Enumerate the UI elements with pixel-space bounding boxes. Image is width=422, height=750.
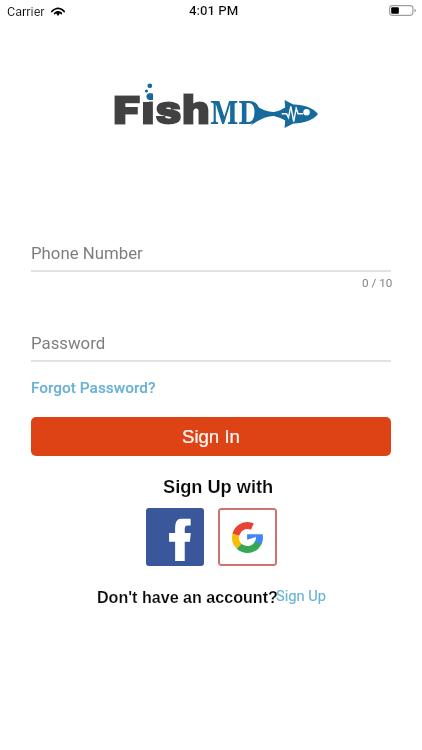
staticText: Sign Up xyxy=(276,587,327,604)
staticText: Phone Number xyxy=(31,243,143,263)
staticText: Don't have an account? xyxy=(97,588,278,606)
staticText: Sign In xyxy=(182,426,240,447)
button[interactable]: Sign up with Facebook xyxy=(146,508,204,566)
staticText: 0 / 10 xyxy=(362,276,393,290)
staticText: Password xyxy=(31,333,106,353)
button[interactable]: Forgot Password? xyxy=(31,379,156,397)
button[interactable]: Sign In xyxy=(31,417,391,456)
other: Battery xyxy=(389,5,418,17)
staticText: MD xyxy=(210,89,261,134)
button[interactable]: Sign up with Google xyxy=(218,508,277,566)
staticText: Fish xyxy=(112,90,211,133)
staticText: Carrier xyxy=(7,4,45,19)
button[interactable]: Sign Up xyxy=(276,587,327,604)
other: Wi-Fi xyxy=(50,6,66,16)
staticText: 4:01 PM xyxy=(189,3,239,18)
staticText: Forgot Password? xyxy=(31,379,156,397)
staticText: Sign Up with xyxy=(163,477,274,497)
